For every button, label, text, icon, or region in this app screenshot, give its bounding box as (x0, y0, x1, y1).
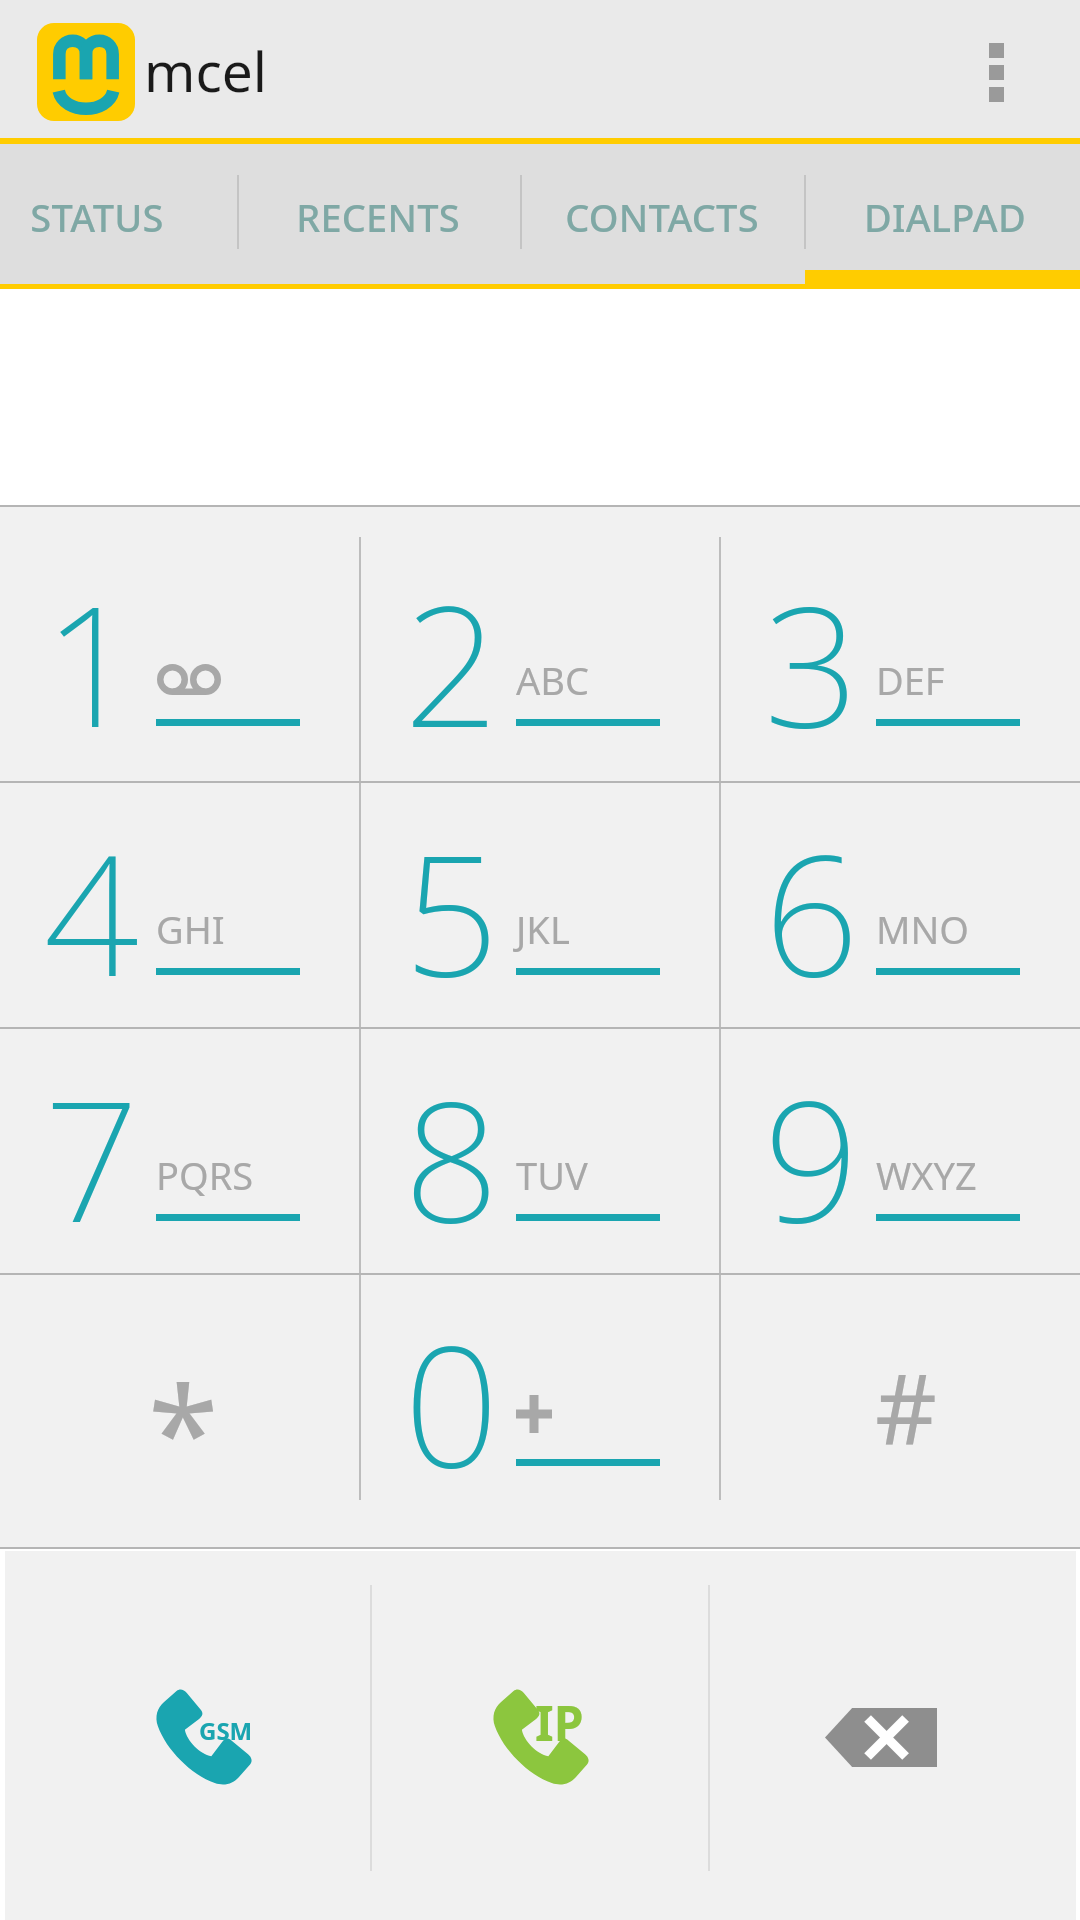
staticText: DIALPAD (864, 191, 1026, 243)
staticText: JKL (516, 903, 570, 955)
button[interactable] (521, 144, 805, 289)
staticText: TUV (516, 1149, 588, 1201)
button[interactable]: 4 (0, 782, 360, 1028)
button[interactable]: 8 (360, 1028, 720, 1274)
button[interactable] (805, 144, 1080, 289)
staticText: WXYZ (876, 1149, 977, 1201)
button[interactable]: 0 (360, 1274, 720, 1549)
staticText: 7 (43, 1043, 139, 1270)
staticText: 6 (763, 797, 859, 1024)
button[interactable]: 6 (720, 782, 1080, 1028)
button[interactable]: IP call (371, 1549, 709, 1920)
staticText: IP (535, 1690, 584, 1755)
staticText: 4 (43, 797, 139, 1024)
button[interactable]: GSM call (5, 1549, 371, 1920)
staticText: GSM (199, 1714, 253, 1747)
button[interactable]: # (720, 1274, 1080, 1549)
staticText: MNO (876, 903, 970, 955)
staticText: 8 (403, 1043, 499, 1270)
button[interactable]: * (0, 1274, 360, 1549)
staticText: CONTACTS (565, 191, 759, 243)
staticText: mcel (144, 33, 268, 108)
staticText: * (148, 1342, 219, 1516)
staticText: ABC (516, 654, 589, 706)
staticText: GHI (156, 903, 225, 955)
staticText: 1 (43, 548, 139, 775)
staticText: 3 (763, 548, 859, 775)
staticText: RECENTS (296, 191, 460, 243)
button[interactable]: More options (912, 0, 1080, 144)
staticText: 9 (763, 1043, 859, 1270)
button[interactable]: 7 (0, 1028, 360, 1274)
button[interactable]: 1 (0, 506, 360, 782)
staticText: PQRS (156, 1149, 254, 1201)
button[interactable]: 5 (360, 782, 720, 1028)
staticText: # (875, 1341, 938, 1472)
button[interactable] (0, 144, 238, 289)
staticText: 5 (403, 797, 499, 1024)
button[interactable]: mcel logo (37, 23, 135, 121)
staticText: 2 (403, 548, 499, 775)
button[interactable] (238, 144, 521, 289)
staticText: STATUS (30, 191, 164, 243)
button[interactable]: 2 (360, 506, 720, 782)
staticText: 0 (403, 1288, 499, 1515)
button[interactable]: Backspace (709, 1549, 1076, 1920)
button[interactable]: 9 (720, 1028, 1080, 1274)
button[interactable]: 3 (720, 506, 1080, 782)
staticText: DEF (876, 654, 945, 706)
